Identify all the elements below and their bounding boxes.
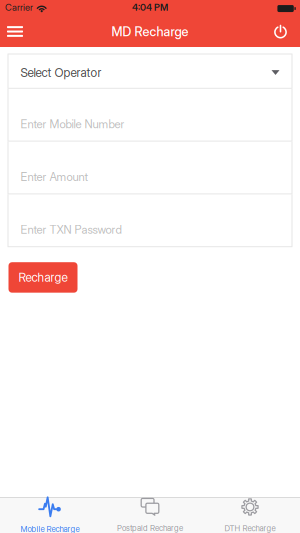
staticText: Postpaid Recharge xyxy=(117,523,183,533)
staticText: Enter TXN Password xyxy=(20,223,121,237)
button[interactable]: Postpaid Recharge xyxy=(100,497,200,533)
staticText: Enter Amount xyxy=(20,170,88,184)
button[interactable]: Menu xyxy=(0,17,30,48)
button[interactable]: Enter Mobile Number xyxy=(7,89,292,142)
button[interactable]: Mobile Recharge xyxy=(0,497,100,533)
button[interactable]: Enter TXN Password xyxy=(7,194,292,247)
button[interactable]: Power xyxy=(265,17,295,48)
button[interactable]: DTH Recharge xyxy=(200,497,300,533)
staticText: DTH Recharge xyxy=(224,524,275,533)
button[interactable]: Recharge xyxy=(8,262,77,293)
staticText: Recharge xyxy=(18,270,67,285)
staticText: Select Operator xyxy=(20,65,101,80)
staticText: Carrier xyxy=(5,2,33,13)
staticText: Mobile Recharge xyxy=(20,524,79,533)
staticText: MD Recharge xyxy=(111,24,188,39)
staticText: Enter Mobile Number xyxy=(20,117,124,131)
button[interactable]: Select Operator xyxy=(7,53,292,89)
button[interactable]: Enter Amount xyxy=(7,142,292,194)
staticText: 4:04 PM xyxy=(132,2,168,13)
